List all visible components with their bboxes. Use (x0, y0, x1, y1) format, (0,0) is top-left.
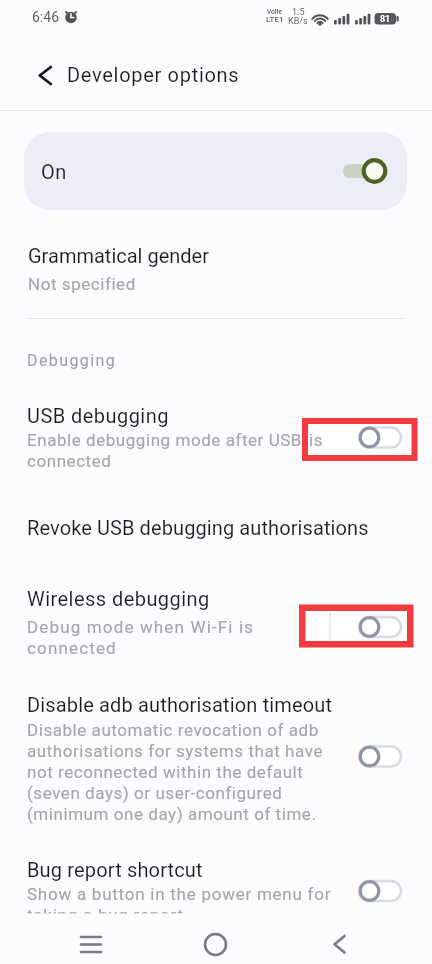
staticText: 1.5 (292, 7, 305, 18)
staticText: Show a button in the power menu for taki… (27, 884, 332, 925)
staticText: Volte (267, 8, 283, 16)
staticText: Debug mode when Wi-Fi is connected (27, 617, 255, 658)
staticText: is (309, 430, 324, 450)
staticText: Wireless debugging (27, 587, 210, 610)
staticText: Disable adb authorisation timeout (27, 693, 333, 716)
staticText: Revoke USB debugging authorisations (27, 516, 369, 539)
staticText: Enable debugging mode after USB is conne… (27, 430, 321, 471)
staticText: Grammatical gender (28, 244, 209, 267)
staticText: 81 (380, 14, 391, 25)
staticText: USB debugging (27, 404, 169, 427)
staticText: Bug report shortcut (27, 858, 203, 881)
staticText: KB/s (288, 16, 308, 27)
staticText: Debugging (27, 351, 117, 370)
staticText: LTE1 (266, 15, 284, 24)
staticText: 6:46 (32, 9, 59, 25)
staticText: Developer options (67, 63, 240, 86)
staticText: Disable automatic revocation of adb auth… (27, 720, 323, 824)
staticText: On (41, 160, 67, 183)
staticText: Not specified (28, 274, 136, 294)
